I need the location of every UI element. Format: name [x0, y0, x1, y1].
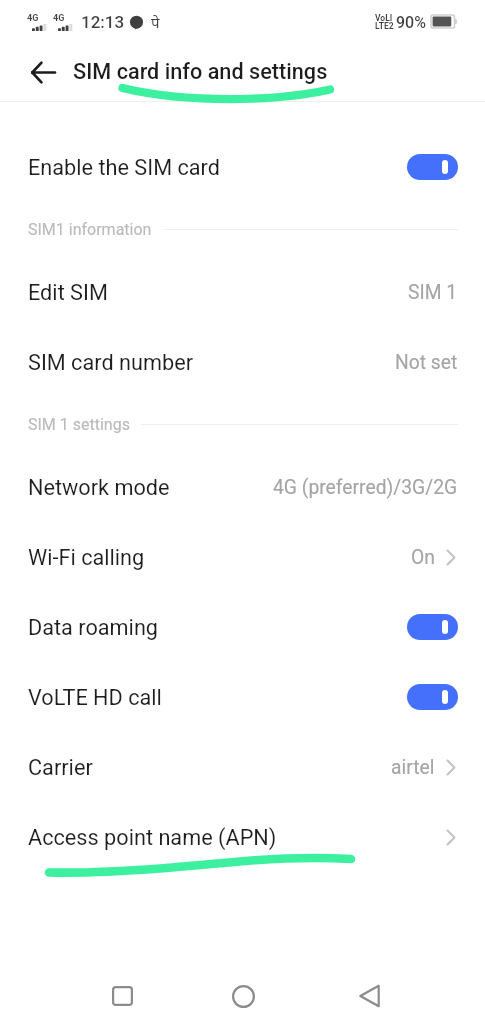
- staticText: 4G: [53, 13, 65, 24]
- staticText: 4G (preferred)/3G/2G: [273, 476, 458, 499]
- button[interactable]: Wi-Fi calling: [0, 522, 485, 592]
- staticText: Not set: [395, 351, 458, 374]
- button[interactable]: Network mode: [0, 452, 485, 522]
- staticText: airtel: [391, 756, 435, 779]
- staticText: Wi-Fi calling: [28, 545, 145, 570]
- staticText: On: [411, 546, 435, 569]
- button[interactable]: Toggle Enable the SIM card: [407, 154, 458, 180]
- staticText: 4G: [27, 13, 39, 24]
- staticText: VoLTE HD call: [28, 685, 162, 710]
- button[interactable]: Edit SIM: [0, 257, 485, 327]
- button[interactable]: SIM card number: [0, 327, 485, 397]
- staticText: Carrier: [28, 755, 93, 780]
- staticText: 12:13: [81, 12, 125, 32]
- staticText: पे: [151, 12, 160, 32]
- button[interactable]: Recent apps: [94, 968, 150, 1024]
- staticText: Enable the SIM card: [28, 155, 220, 180]
- staticText: 90%: [396, 13, 426, 32]
- staticText: SIM 1: [408, 281, 458, 304]
- button[interactable]: Back: [341, 968, 397, 1024]
- staticText: LTE2: [375, 21, 394, 31]
- button[interactable]: Back: [21, 51, 65, 95]
- staticText: SIM card info and settings: [73, 59, 328, 84]
- button[interactable]: Toggle Data roaming: [407, 614, 458, 640]
- button[interactable]: Access point name (APN): [0, 802, 485, 872]
- staticText: SIM1 information: [28, 220, 152, 239]
- button[interactable]: Toggle VoLTE HD call: [407, 684, 458, 710]
- button[interactable]: Carrier: [0, 732, 485, 802]
- button[interactable]: Home: [215, 968, 271, 1024]
- staticText: SIM card number: [28, 350, 193, 375]
- staticText: Network mode: [28, 475, 170, 500]
- button[interactable]: VoLTE HD call: [0, 662, 485, 732]
- staticText: Edit SIM: [28, 280, 108, 305]
- staticText: Data roaming: [28, 615, 159, 640]
- staticText: Access point name (APN): [28, 825, 277, 850]
- button[interactable]: Data roaming: [0, 592, 485, 662]
- staticText: VoLI: [375, 13, 393, 23]
- staticText: SIM 1 settings: [28, 415, 130, 434]
- button[interactable]: Enable the SIM card: [0, 132, 485, 202]
